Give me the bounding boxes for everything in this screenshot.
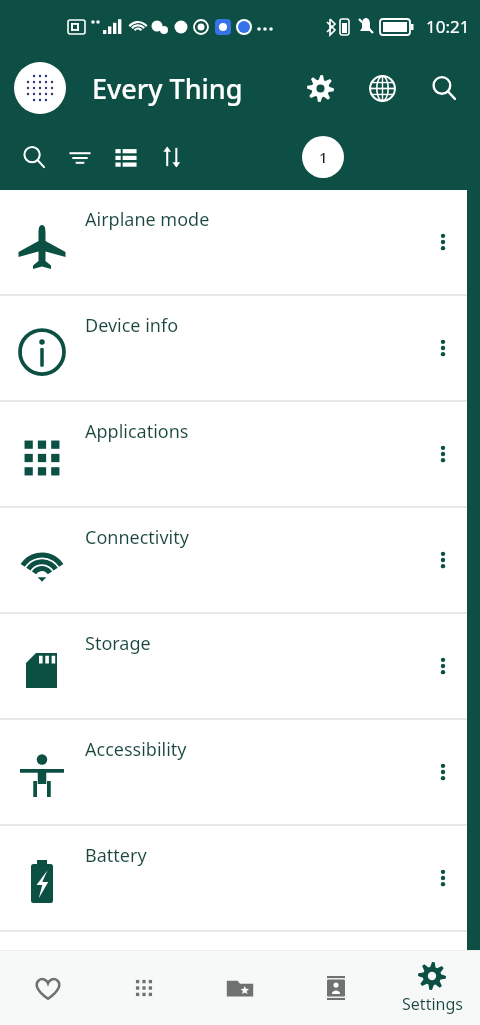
button[interactable]: Filter [58,135,102,179]
button[interactable]: Connectivity [0,508,480,612]
staticText: Every Thing [92,70,243,107]
staticText: Connectivity [85,525,189,550]
staticText: Settings [402,993,463,1015]
button[interactable]: Settings [298,66,342,110]
button[interactable]: View mode [104,135,148,179]
button[interactable]: More options for Storage [419,642,467,690]
button[interactable]: More options for Applications [419,430,467,478]
button[interactable]: App logo [14,62,66,114]
button[interactable]: Settings [387,951,477,1025]
button[interactable]: Favourites [3,951,93,1025]
button[interactable]: Contacts [291,951,381,1025]
button[interactable]: Folders [195,951,285,1025]
button[interactable]: More options for Device info [419,324,467,372]
staticText: 1 [319,147,328,167]
button[interactable]: Applications [0,402,480,506]
staticText: Airplane mode [85,207,210,232]
staticText: Storage [85,631,151,656]
button[interactable]: Accessibility [0,720,480,824]
staticText: Battery [85,843,147,868]
button[interactable]: More options for Battery [419,854,467,902]
button[interactable]: More options for Connectivity [419,536,467,584]
button[interactable]: Sort [150,135,194,179]
staticText: Device info [85,313,179,338]
button[interactable]: Device info [0,296,480,400]
button[interactable]: More options for Accessibility [419,748,467,796]
button[interactable]: Battery [0,826,480,930]
staticText: 10:21 [426,15,470,38]
button[interactable]: Search [422,66,466,110]
button[interactable]: 1 [302,136,344,178]
staticText: Applications [85,419,189,444]
staticText: Accessibility [85,737,187,762]
button[interactable]: Search list [12,135,56,179]
button[interactable]: Airplane mode [0,190,480,294]
button[interactable]: Apps [99,951,189,1025]
button[interactable]: More options for Airplane mode [419,218,467,266]
button[interactable]: Storage [0,614,480,718]
button[interactable]: Language [360,66,404,110]
